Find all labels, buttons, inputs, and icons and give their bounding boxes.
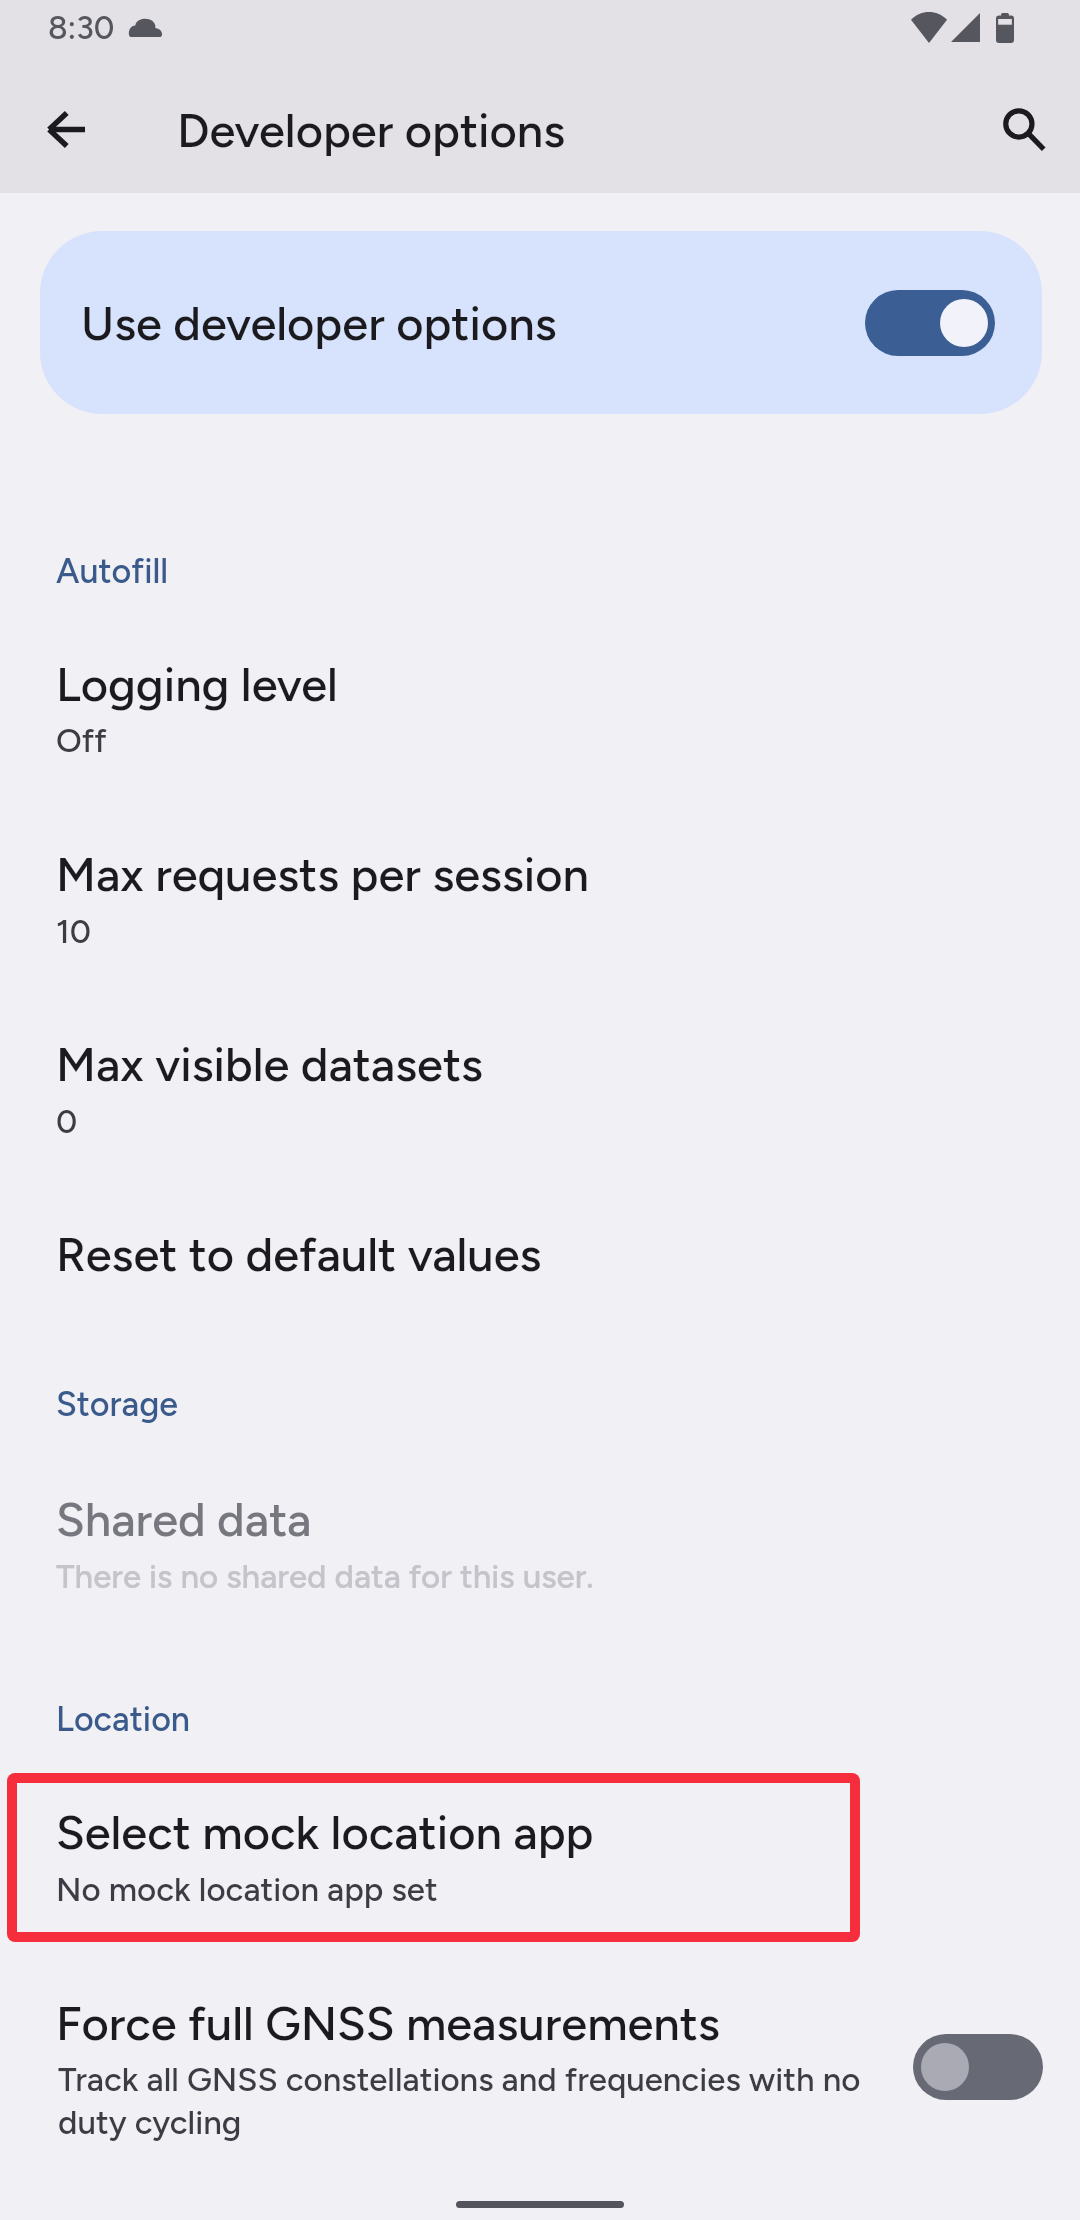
staticText: Storage [56,1384,178,1425]
staticText: 0 [56,1102,78,1142]
staticText: Autofill [56,551,169,592]
staticText: Location [56,1699,190,1740]
staticText: No mock location app set [56,1870,438,1910]
staticText: Shared data [56,1491,312,1547]
button[interactable]: Force full GNSS measurements toggle [913,2034,1043,2100]
staticText: Use developer options [81,295,865,351]
staticText: Reset to default values [56,1226,542,1282]
staticText: Max requests per session [56,846,589,902]
staticText: Select mock location app [56,1804,594,1860]
staticText: Off [56,721,107,761]
staticText: Logging level [56,656,338,712]
button[interactable]: Use developer options toggle [865,290,995,356]
button[interactable]: Back [24,87,108,171]
staticText: Track all GNSS constellations and freque… [58,2060,861,2100]
button[interactable]: Search [981,87,1065,171]
staticText: Developer options [177,102,566,158]
button[interactable]: Use developer options [40,231,1042,414]
staticText: There is no shared data for this user. [56,1557,594,1597]
staticText: duty cycling [58,2103,242,2143]
staticText: Force full GNSS measurements [56,1995,720,2051]
staticText: Max visible datasets [56,1036,483,1092]
staticText: 10 [56,912,92,952]
staticText: 8:30 [48,9,115,47]
